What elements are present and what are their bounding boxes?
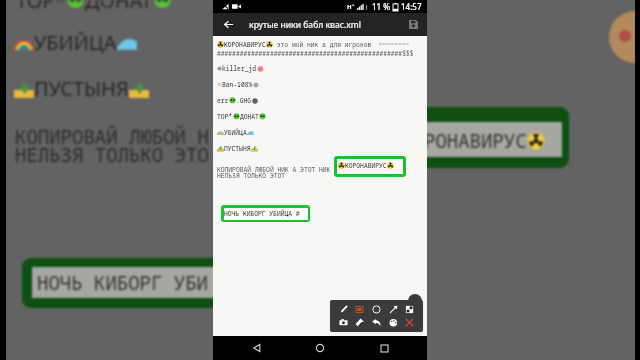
button[interactable]: Rectangle (353, 303, 366, 316)
staticText: Ban-108% (222, 80, 253, 89)
staticText: err (217, 96, 229, 105)
button[interactable]: Home (300, 336, 340, 360)
staticText: УБИЙЦА (224, 128, 247, 137)
button[interactable]: Back (213, 13, 244, 36)
staticText: НОЧЬ КИБОРГ УБИ (37, 270, 209, 296)
staticText: 14:57 (401, 1, 422, 12)
staticText: КОРОНАВИРУС (224, 40, 266, 49)
button[interactable]: Undo (370, 316, 383, 329)
staticText: КОПИРОВАЙ ЛЮБОЙ НИК А ЭТОТ НИК (217, 165, 331, 174)
button[interactable]: Close (403, 316, 416, 329)
button[interactable]: Save (402, 13, 424, 36)
staticText: ПУСТЫНЯ (34, 75, 129, 102)
staticText: killer_jd (222, 64, 257, 73)
button[interactable]: Back (237, 336, 277, 360)
staticText: КОРОНАВИРУС (345, 161, 387, 170)
staticText: УБИЙЦА (34, 29, 117, 56)
staticText: TOP* (16, 0, 66, 14)
button[interactable]: Camera (337, 316, 350, 329)
staticText: это мой ник а для игроков ~~~~~~~~ (273, 40, 410, 49)
button[interactable]: Circle (370, 303, 383, 316)
staticText: ПУСТЫНЯ (224, 144, 251, 153)
staticText: НЕЛЬЗЯ ТОЛЬКО ЭТО (15, 142, 209, 168)
button[interactable]: Palette (387, 316, 400, 329)
staticText: НОЧЬ КИБОРГ УБИЙЦА # (224, 209, 300, 218)
button[interactable]: Mosaic (403, 303, 416, 316)
staticText: TOP* (217, 112, 233, 121)
staticText: 11 % (372, 1, 391, 12)
staticText: H (347, 3, 352, 11)
staticText: ДОНАТ (85, 0, 153, 14)
button[interactable]: Arrow (387, 303, 400, 316)
staticText: ДОНАТ (240, 112, 259, 121)
button[interactable]: Recents (364, 336, 404, 360)
staticText: РОНАВИРУС (424, 128, 527, 154)
staticText: крутые ники бабл квас.xml (249, 19, 361, 30)
staticText: + (352, 2, 355, 7)
staticText: НЕЛЬЗЯ ТОЛЬКО ЭТОТ (217, 171, 286, 180)
button[interactable]: Brush (337, 303, 350, 316)
staticText: ########################################… (217, 49, 414, 58)
button[interactable]: Eraser (353, 316, 366, 329)
staticText: .GHG (236, 96, 252, 105)
staticText: КОПИРОВАЙ ЛЮБОЙ Н (15, 124, 209, 150)
